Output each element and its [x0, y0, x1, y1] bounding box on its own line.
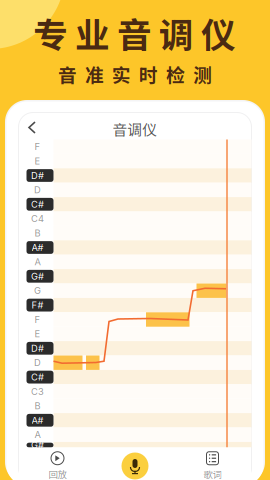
staticText: D	[34, 184, 41, 196]
staticText: G#	[31, 271, 44, 282]
staticText: C#	[31, 199, 44, 210]
staticText: 回放	[48, 467, 66, 480]
staticText: 专业音调仪	[33, 8, 236, 58]
button[interactable]: 回放	[19, 450, 96, 480]
staticText: A#	[31, 415, 43, 426]
staticText: E	[34, 155, 40, 167]
button[interactable]: 录音	[96, 450, 174, 480]
staticText: B	[34, 400, 40, 412]
staticText: A	[34, 429, 40, 440]
staticText: B	[34, 227, 40, 239]
button[interactable]: 返回	[28, 121, 48, 139]
staticText: A#	[31, 242, 43, 253]
staticText: G	[34, 285, 41, 296]
staticText: D#	[31, 170, 44, 181]
staticText: F#	[31, 299, 43, 311]
staticText: 歌词	[203, 467, 221, 480]
staticText: A	[34, 256, 40, 268]
staticText: F	[34, 314, 40, 325]
staticText: G#	[31, 439, 44, 451]
staticText: D#	[31, 343, 44, 354]
staticText: 音准实时检测	[58, 60, 212, 87]
staticText: F	[34, 141, 40, 152]
button[interactable]: 歌词	[174, 450, 251, 480]
staticText: C4	[31, 213, 44, 224]
staticText: 音调仪	[112, 118, 157, 140]
staticText: E	[34, 328, 40, 340]
staticText: C#	[31, 371, 44, 383]
staticText: C3	[31, 386, 44, 397]
staticText: D	[34, 357, 41, 368]
